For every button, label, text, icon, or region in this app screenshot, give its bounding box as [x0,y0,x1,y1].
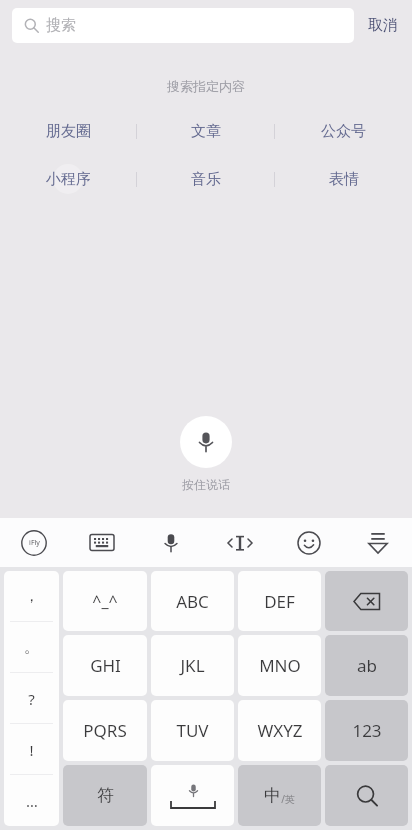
button[interactable]: ABC [151,571,234,631]
staticText: 搜索指定内容 [167,78,245,94]
button[interactable]: PQRS [63,700,147,761]
button[interactable]: 表情 [275,164,412,194]
button[interactable]: Voice input [136,518,205,567]
button[interactable]: ab [325,635,408,696]
staticText: TUV [176,719,209,742]
staticText: 表情 [329,170,359,189]
staticText: … [26,791,38,811]
button[interactable]: Emoji [274,518,343,567]
staticText: 。 [24,638,39,657]
button[interactable]: 公众号 [275,116,412,146]
button[interactable]: 音乐 [137,164,274,194]
staticText: DEF [264,590,295,613]
button[interactable]: WXYZ [238,700,321,761]
button[interactable]: DEF [238,571,321,631]
button[interactable]: 朋友圈 [0,116,136,146]
button[interactable]: 小程序 [0,164,136,194]
staticText: WXYZ [257,719,303,742]
staticText: 公众号 [321,122,366,141]
button[interactable]: 中 [238,765,321,826]
button[interactable]: GHI [63,635,147,696]
button[interactable]: Keyboard layout [68,518,136,567]
staticText: /英 [281,792,295,806]
button[interactable]: ， [4,571,59,622]
staticText: ^_^ [92,590,118,612]
staticText: MNO [259,654,301,677]
button[interactable]: 符 [63,765,147,826]
staticText: 搜索 [46,16,76,35]
button[interactable]: TUV [151,700,234,761]
staticText: ? [28,689,35,709]
button[interactable]: Space [151,765,234,826]
staticText: JKL [180,654,205,677]
button[interactable]: ! [4,724,59,775]
staticText: 符 [97,785,114,806]
staticText: ABC [176,590,209,613]
button[interactable]: ? [4,673,59,724]
staticText: iFly [29,538,40,548]
staticText: 取消 [368,16,398,35]
button[interactable]: Backspace [325,571,408,631]
button[interactable]: ^_^ [63,571,147,631]
staticText: 123 [352,719,382,742]
staticText: ， [24,587,39,606]
staticText: 朋友圈 [46,122,91,141]
staticText: 按住说话 [182,477,230,492]
button[interactable]: MNO [238,635,321,696]
button[interactable]: JKL [151,635,234,696]
staticText: 小程序 [46,170,91,189]
button[interactable]: 按住说话 [0,416,412,492]
button[interactable]: 文章 [137,116,274,146]
staticText: 音乐 [191,170,221,189]
staticText: GHI [90,654,121,677]
button[interactable]: Search [325,765,408,826]
staticText: 中 [264,785,281,806]
staticText: 文章 [191,122,221,141]
button[interactable]: Move cursor [205,518,274,567]
button[interactable]: 123 [325,700,408,761]
button[interactable]: 取消 [354,0,412,50]
button[interactable]: Input method [0,518,68,567]
button[interactable]: Hide keyboard [343,518,412,567]
button[interactable]: 。 [4,622,59,673]
staticText: PQRS [83,719,127,742]
button[interactable]: … [4,775,59,826]
button[interactable]: 搜索 [12,8,354,43]
staticText: ab [357,654,377,677]
staticText: ! [29,740,34,760]
